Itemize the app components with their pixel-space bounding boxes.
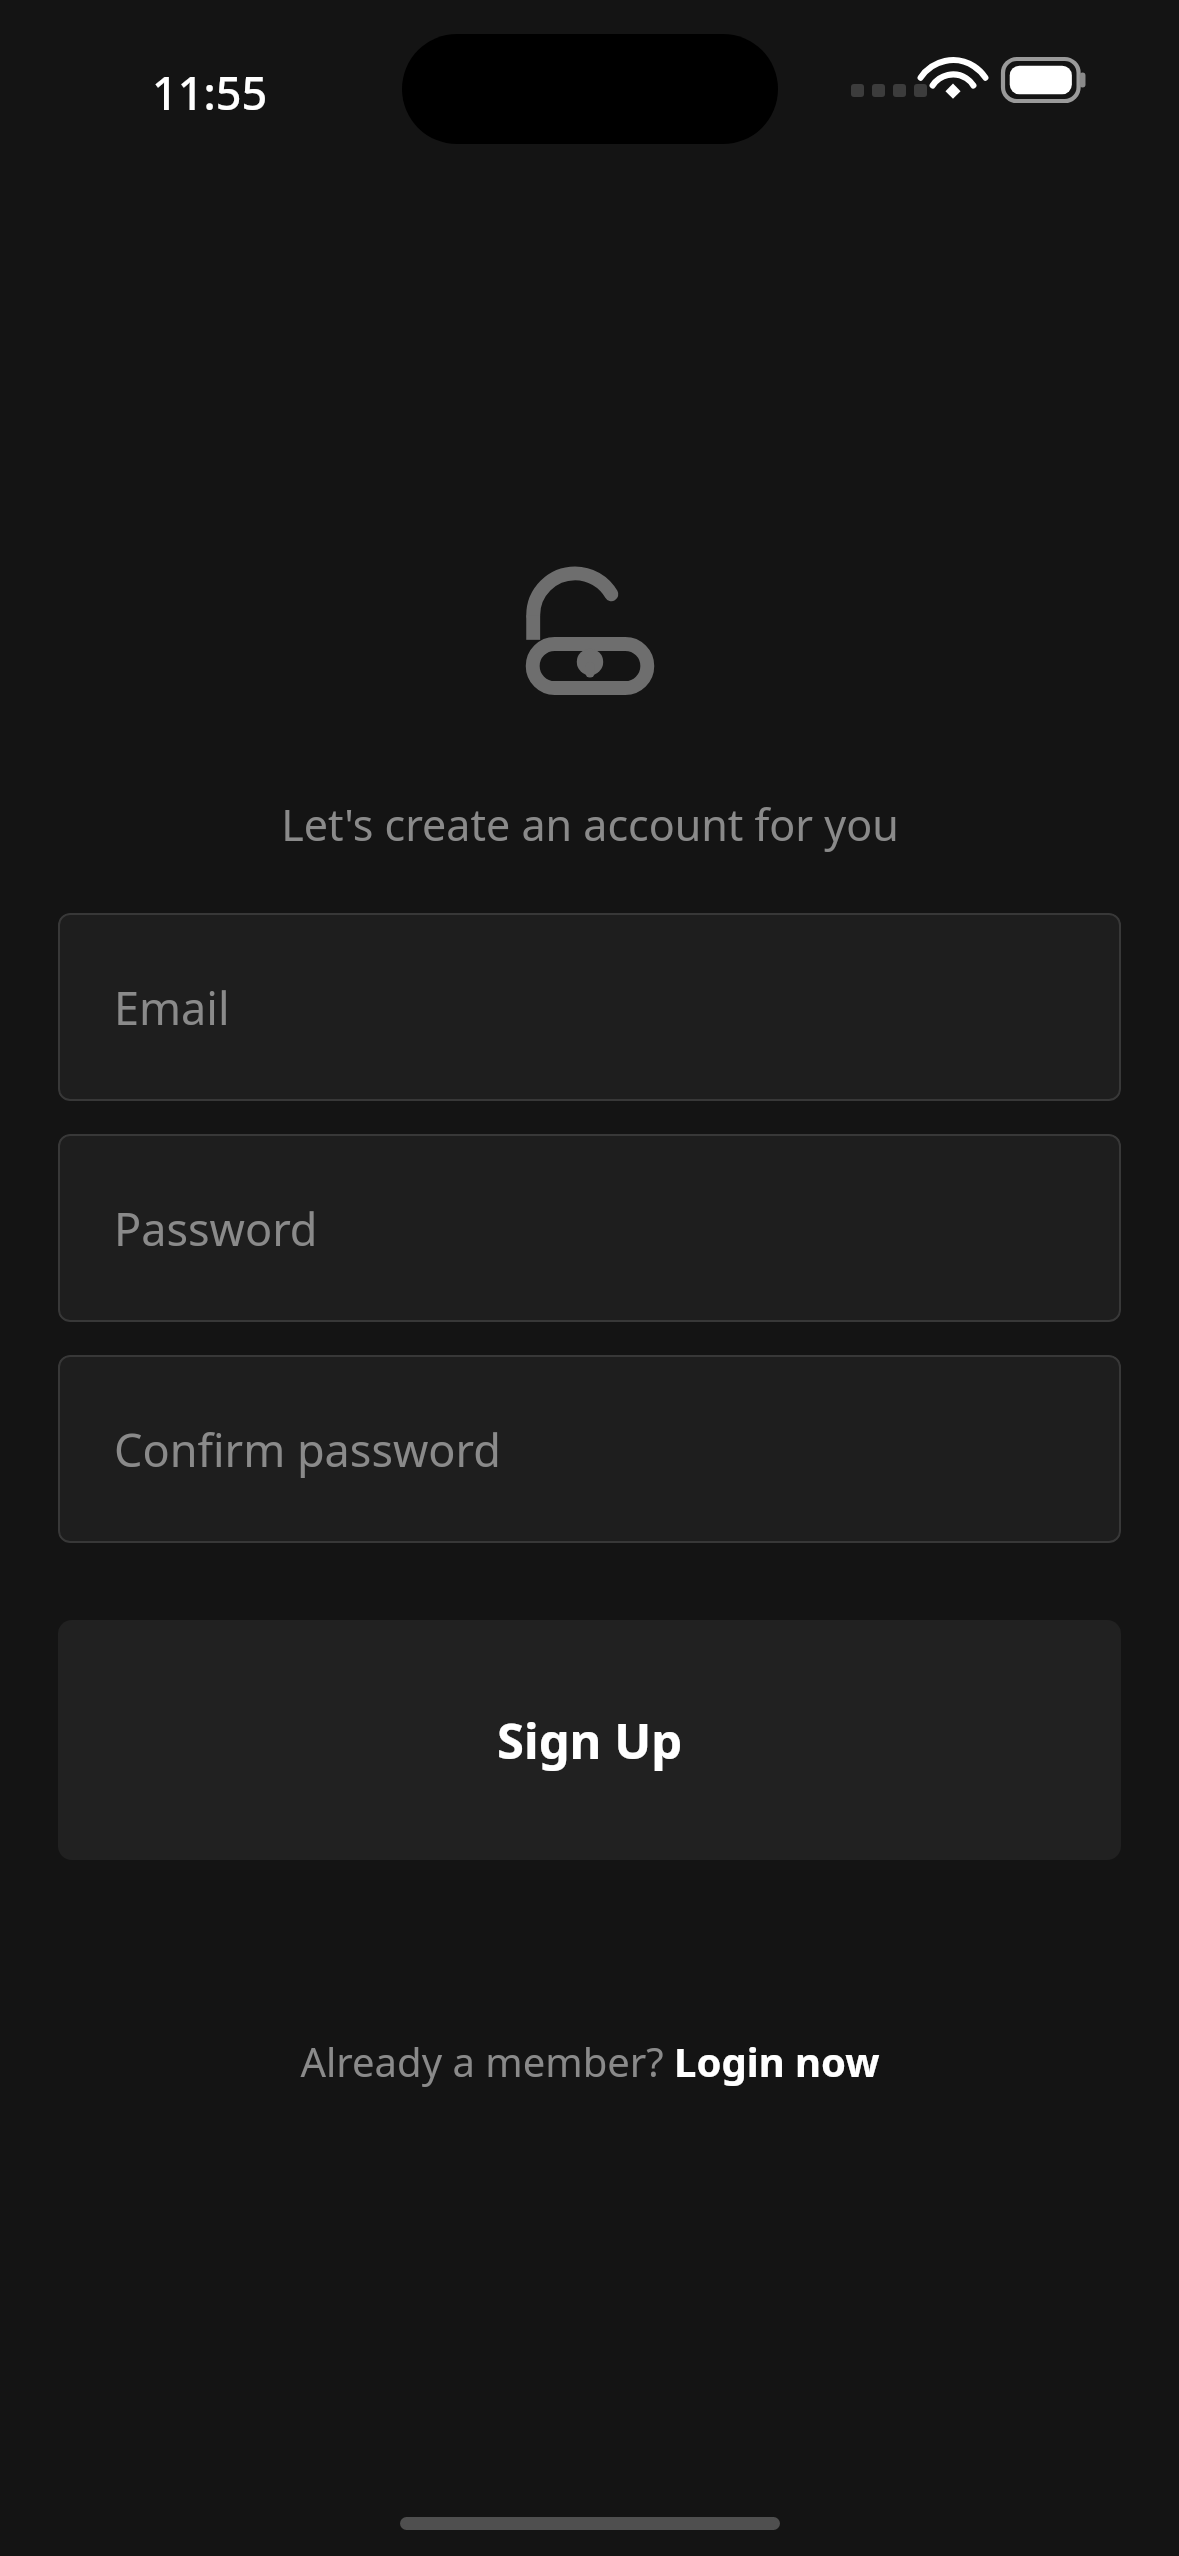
staticText: Already a member? Login now [300,2034,880,2088]
staticText: Password [114,1198,318,1259]
staticText: Confirm password [114,1419,501,1480]
button[interactable]: Already a member? Login now [276,2020,904,2102]
staticText: 11:55 [152,62,268,123]
button[interactable]: Confirm password [58,1355,1121,1543]
staticText: Sign Up [497,1707,683,1774]
button[interactable]: Email [58,913,1121,1101]
staticText: Let's create an account for you [281,795,899,854]
button[interactable]: Sign Up [58,1620,1121,1860]
button[interactable]: Password [58,1134,1121,1322]
staticText: Email [114,977,230,1038]
other: Unlocked padlock [519,527,661,695]
